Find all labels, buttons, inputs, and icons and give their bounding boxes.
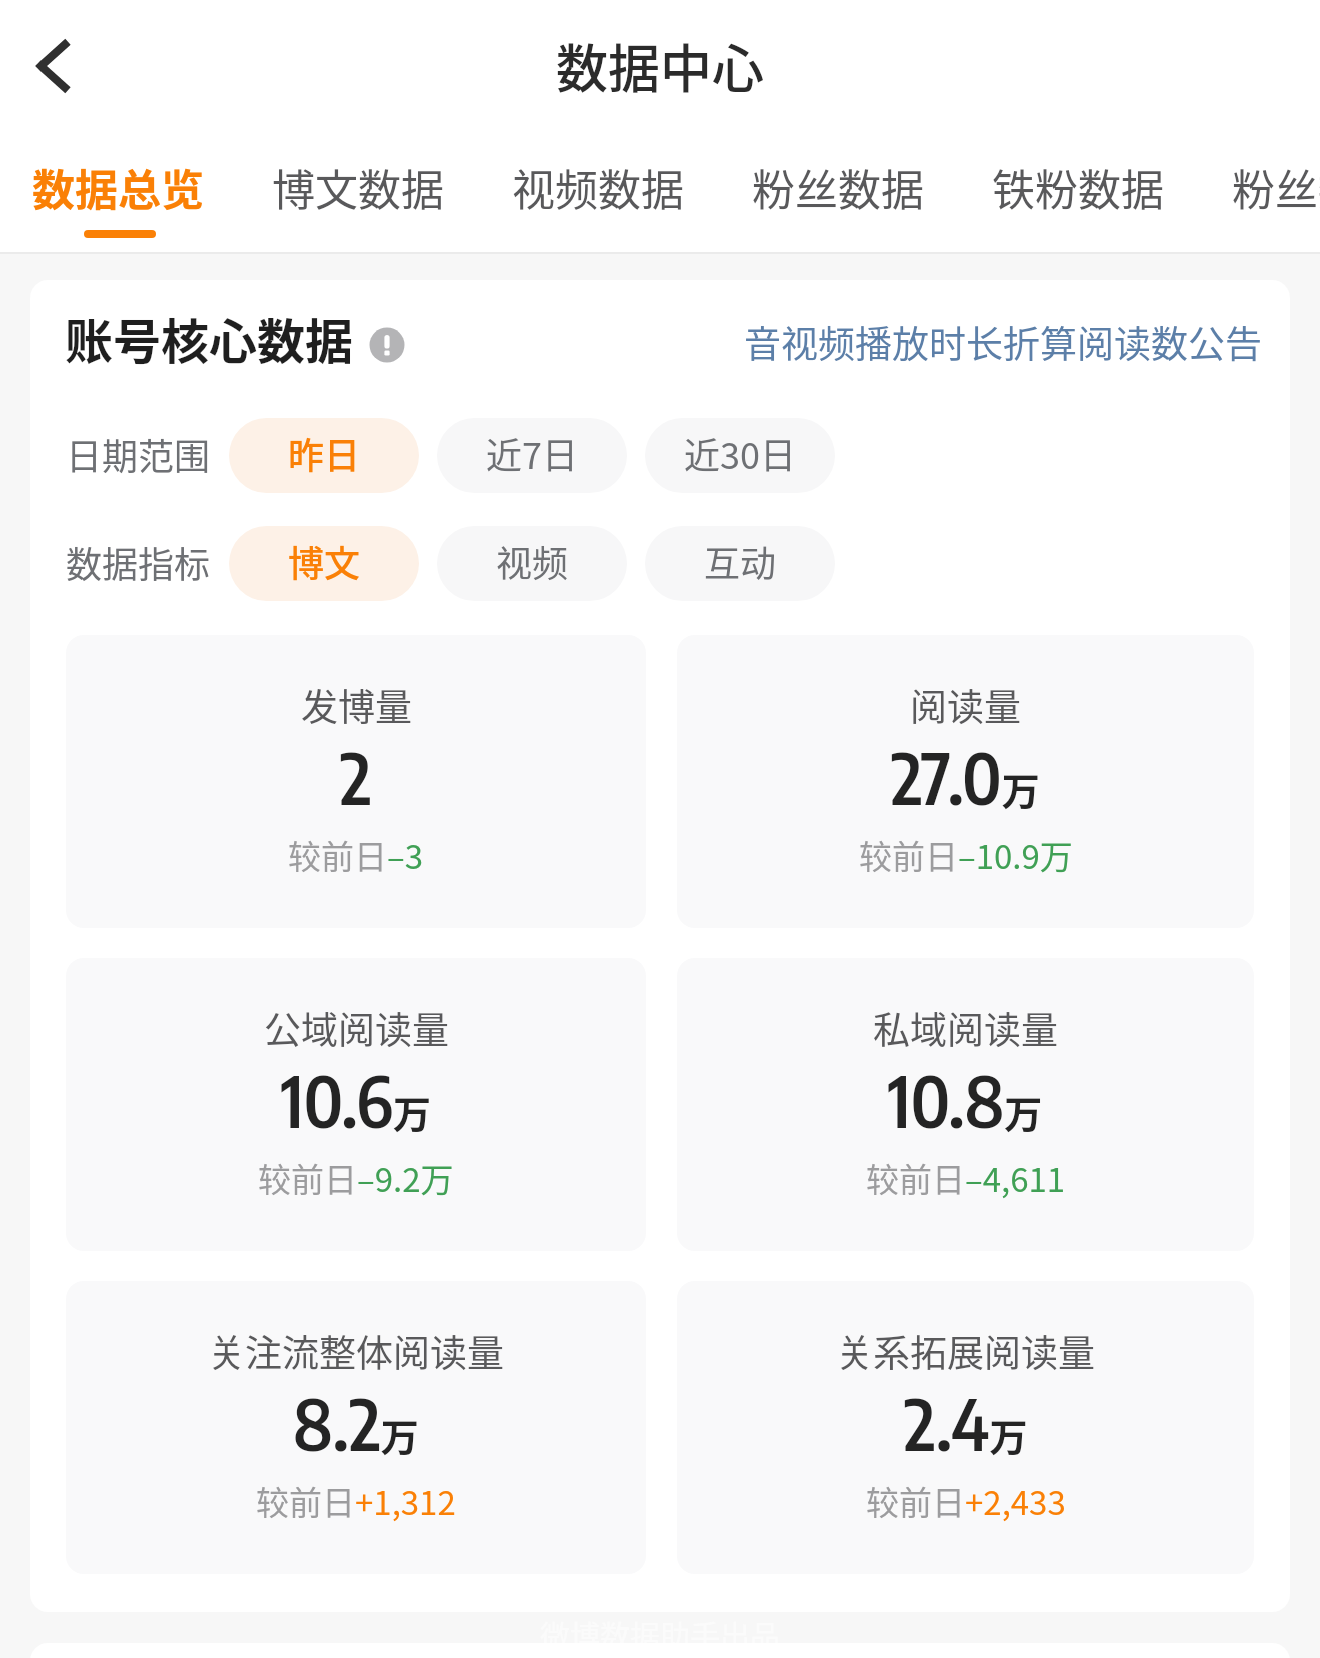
staticText: 较前日–10.9万 [859, 831, 1073, 879]
staticText: 博文 [288, 535, 361, 587]
staticText: 日期范围 [66, 428, 211, 480]
staticText: 数据指标 [66, 536, 211, 588]
button[interactable]: Back [14, 29, 90, 105]
button[interactable]: 视频数据 [488, 130, 706, 252]
button[interactable]: 铁粉数据 [968, 130, 1186, 252]
staticText: 发博量 [301, 678, 412, 732]
button[interactable]: 公域阅读量 [66, 958, 646, 1251]
staticText: 视频数据 [512, 156, 684, 218]
staticText: 近30日 [684, 427, 796, 479]
staticText: 10.8万 [888, 1056, 1043, 1143]
button[interactable]: 互动 [645, 526, 835, 601]
staticText: 2 [340, 733, 372, 820]
button[interactable]: 关系拓展阅读量 [677, 1281, 1254, 1574]
staticText: 关系拓展阅读量 [836, 1324, 1095, 1378]
button[interactable]: Info [363, 321, 411, 369]
staticText: 博文数据 [272, 156, 444, 218]
button[interactable]: 粉丝数据 [728, 130, 946, 252]
staticText: 铁粉数据 [992, 156, 1164, 218]
staticText: 昨日 [288, 427, 361, 479]
button[interactable]: 近7日 [437, 418, 627, 493]
staticText: 私域阅读量 [873, 1001, 1058, 1055]
button[interactable]: 博文数据 [248, 130, 466, 252]
staticText: 关注流整体阅读量 [208, 1324, 504, 1378]
button[interactable]: 博文 [229, 526, 419, 601]
button[interactable]: 昨日 [229, 418, 419, 493]
staticText: 互动 [704, 535, 777, 587]
button[interactable]: 阅读量 [677, 635, 1254, 928]
staticText: 2.4万 [904, 1379, 1028, 1466]
staticText: 近7日 [486, 427, 578, 479]
staticText: 27.0万 [891, 733, 1040, 820]
staticText: 较前日–9.2万 [258, 1154, 454, 1202]
staticText: 较前日+1,312 [256, 1477, 456, 1525]
staticText: 粉丝数据 [752, 156, 924, 218]
button[interactable]: 音视频播放时长折算阅读数公告 [744, 315, 1262, 369]
button[interactable]: 近30日 [645, 418, 835, 493]
staticText: 较前日+2,433 [866, 1477, 1066, 1525]
staticText: 粉丝数据 [1232, 156, 1320, 218]
staticText: 较前日–3 [288, 831, 424, 879]
staticText: 数据中心 [556, 28, 765, 103]
button[interactable]: 粉丝数据 [1208, 130, 1320, 252]
staticText: 阅读量 [910, 678, 1021, 732]
button[interactable]: 关注流整体阅读量 [66, 1281, 646, 1574]
staticText: 较前日–4,611 [866, 1154, 1066, 1202]
button[interactable]: 数据总览 [8, 130, 226, 252]
staticText: 公域阅读量 [264, 1001, 449, 1055]
button[interactable]: 私域阅读量 [677, 958, 1254, 1251]
button[interactable]: 视频 [437, 526, 627, 601]
staticText: 账号核心数据 [65, 303, 354, 373]
staticText: 10.6万 [281, 1056, 432, 1143]
button[interactable]: 发博量 [66, 635, 646, 928]
staticText: 8.2万 [293, 1379, 419, 1466]
staticText: 视频 [496, 535, 569, 587]
staticText: 数据总览 [32, 156, 204, 218]
